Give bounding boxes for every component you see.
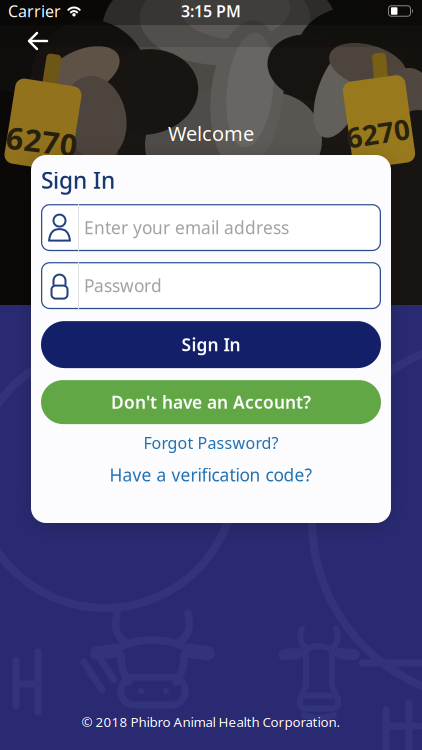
staticText: Password bbox=[84, 274, 162, 297]
staticText: 3:15 PM bbox=[181, 0, 241, 22]
button[interactable]: Back bbox=[17, 22, 59, 60]
button[interactable]: Forgot Password? bbox=[143, 432, 278, 453]
staticText: Have a verification code? bbox=[109, 463, 312, 486]
staticText: 6270 bbox=[346, 114, 410, 152]
button[interactable]: Sign In bbox=[41, 321, 381, 368]
staticText: Enter your email address bbox=[84, 216, 289, 239]
staticText: Carrier bbox=[8, 0, 61, 22]
staticText: Welcome bbox=[168, 120, 254, 147]
button[interactable]: Don't have an Account? bbox=[41, 380, 381, 424]
button[interactable]: Have a verification code? bbox=[109, 463, 312, 486]
staticText: Forgot Password? bbox=[143, 432, 278, 453]
staticText: Don't have an Account? bbox=[111, 391, 311, 414]
staticText: © 2018 Phibro Animal Health Corporation. bbox=[81, 713, 340, 731]
staticText: Sign In bbox=[181, 333, 240, 356]
staticText: 6270 bbox=[6, 121, 78, 161]
staticText: Sign In bbox=[41, 165, 115, 195]
